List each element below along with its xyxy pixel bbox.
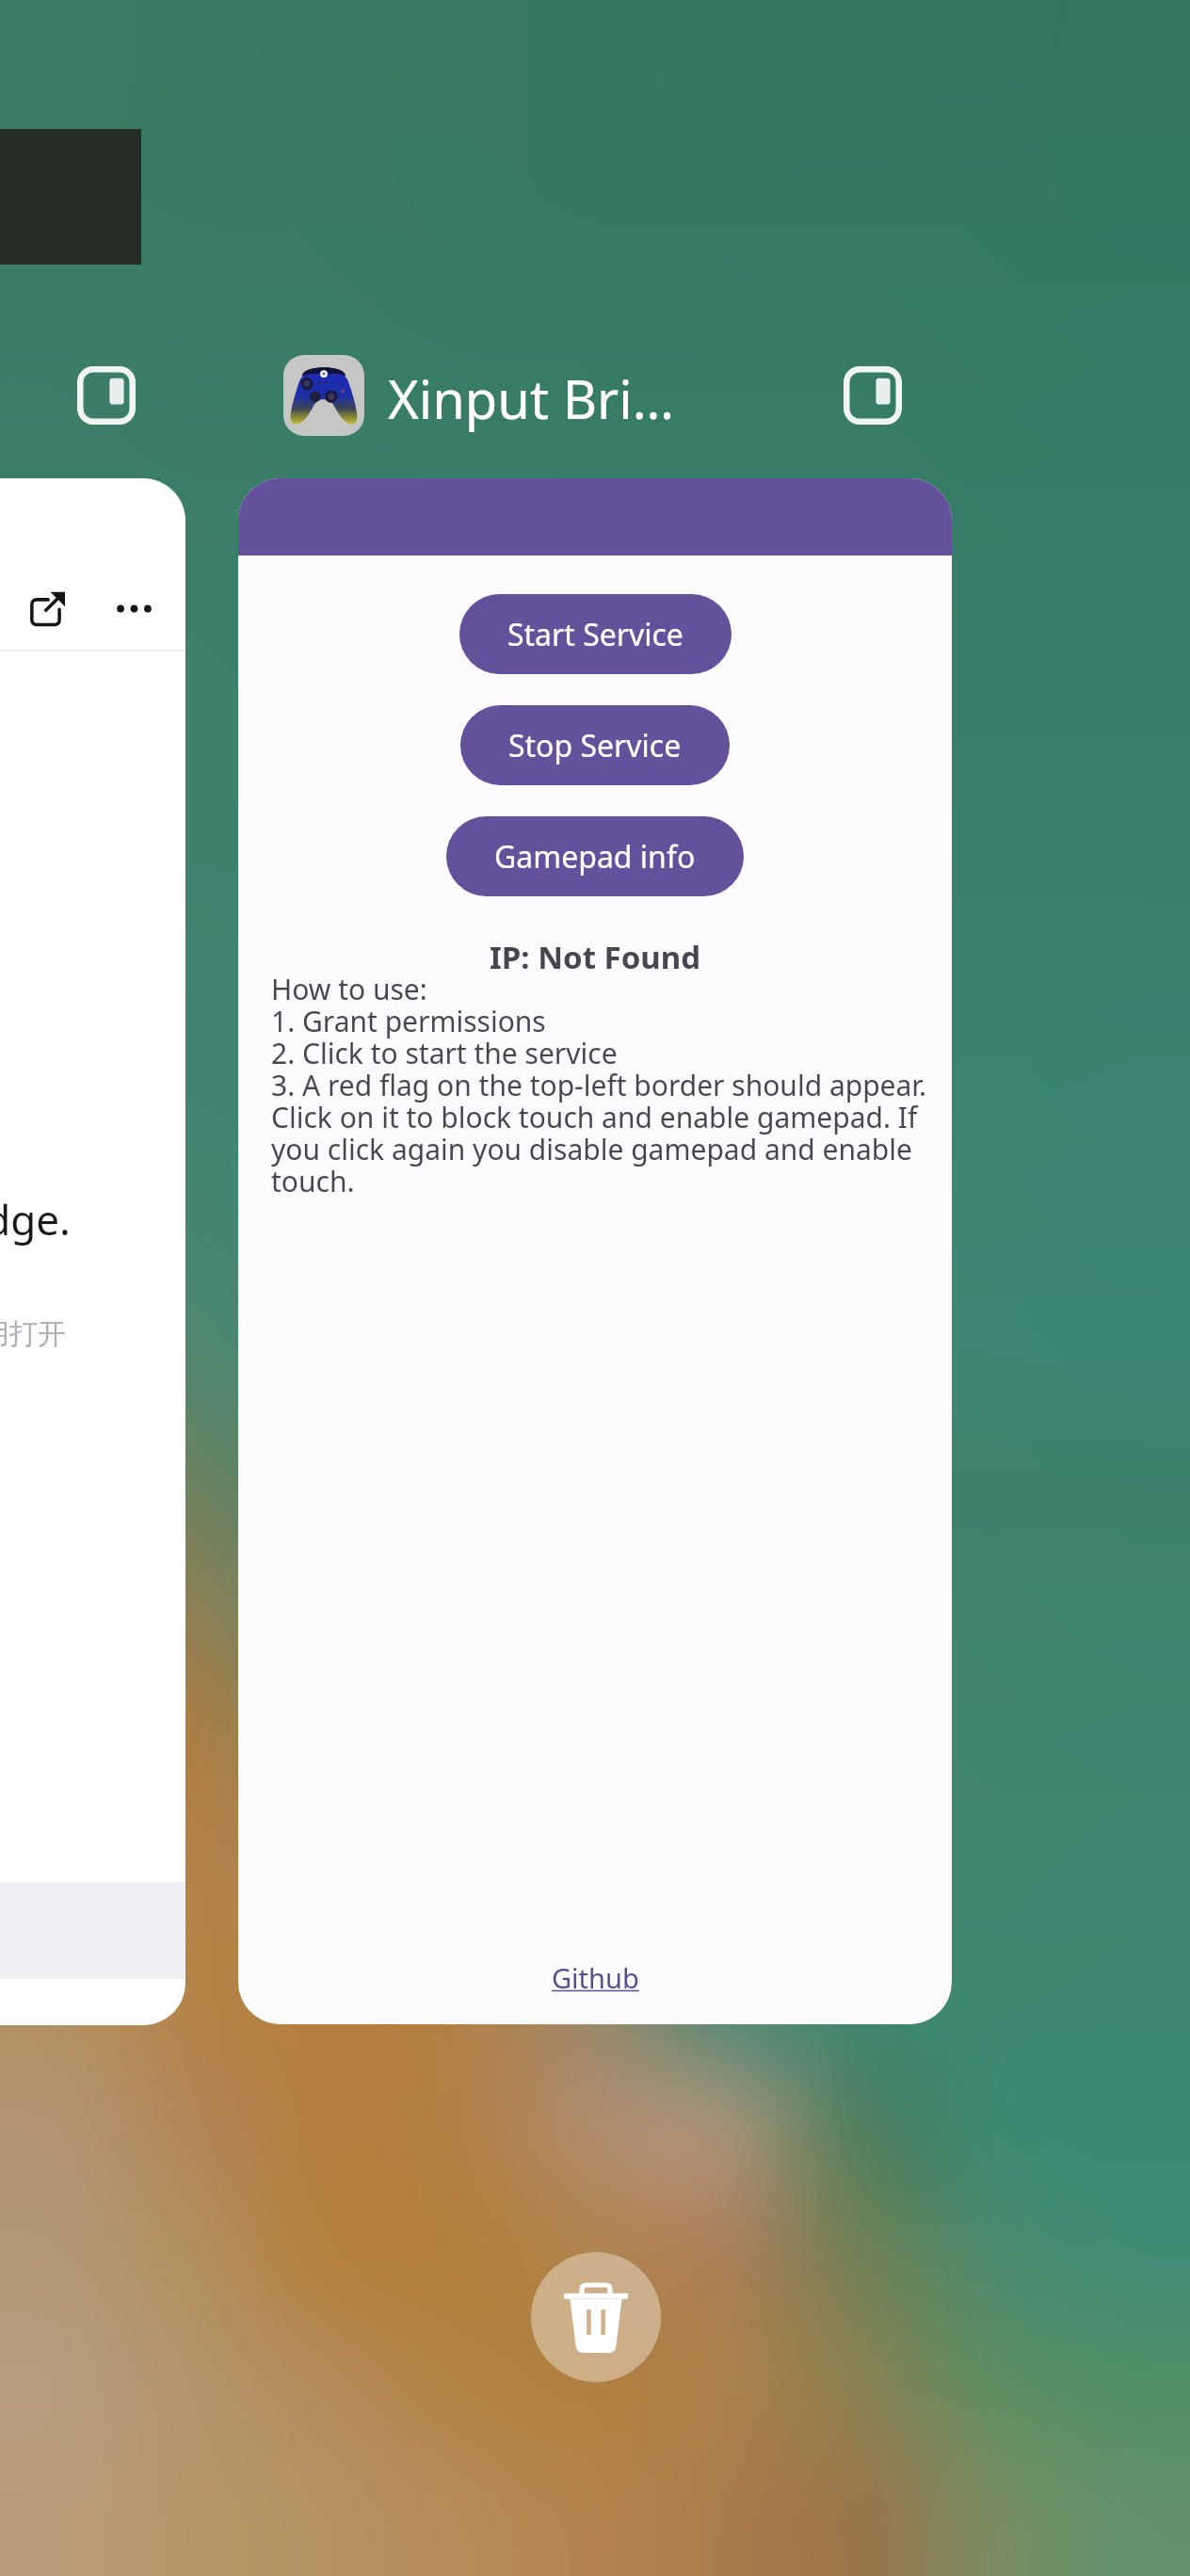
staticText: Gamepad info <box>494 836 696 877</box>
staticText: Github <box>552 1959 639 1996</box>
button[interactable]: Stop Service <box>460 705 730 785</box>
button[interactable]: Open in browser <box>13 574 81 642</box>
button[interactable]: Split screen right <box>844 366 902 425</box>
staticText: Stop Service <box>508 725 682 766</box>
button[interactable]: Clear all <box>531 2252 661 2382</box>
staticText: Xinput Bri… <box>388 362 674 434</box>
staticText: 应用打开 <box>0 1316 66 1352</box>
staticText: How to use: 1. Grant permissions 2. Clic… <box>271 970 941 1199</box>
button[interactable]: Start Service <box>459 594 732 674</box>
button[interactable]: Start Service <box>238 478 952 2024</box>
button[interactable]: Open in browser <box>0 478 185 2025</box>
staticText: Start Service <box>507 614 683 655</box>
button[interactable]: Split screen left <box>77 366 136 425</box>
button[interactable]: More options <box>100 574 168 642</box>
button[interactable] <box>283 355 364 436</box>
staticText: IP: Not Found <box>490 936 701 978</box>
button[interactable]: Github <box>535 1954 656 2002</box>
button[interactable]: Gamepad info <box>446 816 744 896</box>
staticText: knowledge. <box>0 1191 71 1248</box>
